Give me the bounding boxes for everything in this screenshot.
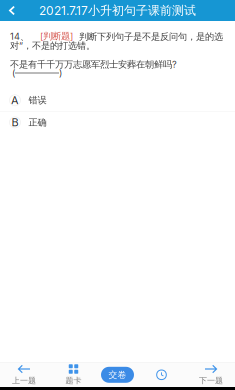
staticText: 判断下列句子是不是反问句，是的选 xyxy=(79,31,223,43)
button[interactable]: 题卡 xyxy=(51,363,95,387)
staticText: 2021.7.17小升初句子课前测试 xyxy=(39,3,196,18)
staticText: 交卷 xyxy=(108,369,126,380)
staticText: 下一题 xyxy=(199,375,223,386)
button[interactable]: Back xyxy=(0,0,24,21)
staticText: 不是有千千万万志愿军烈士安葬在朝鲜吗? xyxy=(10,58,177,70)
staticText: [判断题] xyxy=(40,30,73,42)
staticText: ) xyxy=(59,67,62,78)
staticText: 上一题 xyxy=(12,375,36,386)
staticText: 正确 xyxy=(28,117,46,128)
staticText: 错误 xyxy=(28,94,46,106)
button[interactable]: A xyxy=(0,90,235,111)
button[interactable]: 下一题 xyxy=(189,363,233,387)
button[interactable]: Timer xyxy=(139,363,183,387)
button[interactable]: 交卷 xyxy=(101,367,134,383)
staticText: 题卡 xyxy=(65,375,81,386)
staticText: A xyxy=(11,94,19,107)
staticText: ( xyxy=(12,67,15,78)
button[interactable]: 上一题 xyxy=(2,363,46,387)
button[interactable]: B xyxy=(0,112,235,133)
staticText: 14、 xyxy=(10,31,29,42)
staticText: 对”，不是的打选错。 xyxy=(10,40,95,51)
staticText: B xyxy=(11,116,18,129)
